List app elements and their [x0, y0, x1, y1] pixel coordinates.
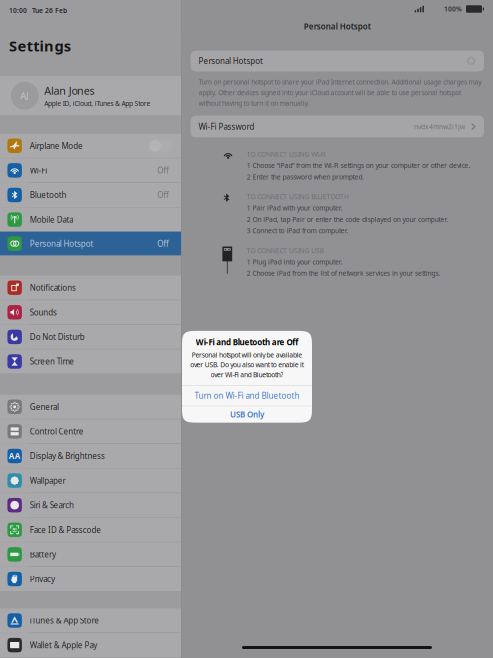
staticText: Display & Brightness	[30, 451, 105, 461]
button[interactable]: Wi-Fi Password	[191, 116, 484, 138]
button[interactable]: Control Centre	[0, 419, 181, 443]
staticText: Wallet & Apple Pay	[30, 640, 97, 650]
button[interactable]: Personal Hotspot	[0, 232, 181, 256]
staticText: Do Not Disturb	[30, 332, 85, 342]
staticText: 1 Plug iPad into your computer.	[247, 257, 343, 266]
button[interactable]: General	[0, 395, 181, 419]
staticText: over Wi-Fi and Bluetooth?	[211, 370, 283, 379]
staticText: Wi-Fi Password	[199, 121, 255, 132]
staticText: apply. Other devices signed into your iC…	[199, 88, 461, 97]
button[interactable]: Personal Hotspot	[191, 50, 484, 71]
staticText: AJ	[20, 89, 29, 102]
staticText: 1 Choose “iPad” from the Wi-Fi settings …	[247, 161, 470, 170]
button[interactable]: Turn on Wi-Fi and Bluetooth	[182, 386, 312, 406]
staticText: Turn on personal hotspot to share your i…	[199, 77, 481, 86]
staticText: Wallpaper	[30, 475, 66, 486]
staticText: Wi-Fi and Bluetooth are Off	[196, 337, 298, 347]
button[interactable]: Notifications	[0, 276, 181, 300]
staticText: 1 Pair iPad with your computer.	[247, 204, 343, 212]
staticText: Privacy	[30, 574, 55, 584]
button[interactable]: Wallpaper	[0, 469, 181, 493]
staticText: Mobile Data	[30, 214, 73, 225]
staticText: Battery	[30, 549, 56, 560]
button[interactable]: Sounds	[0, 300, 181, 324]
button[interactable]: AA	[0, 444, 181, 468]
staticText: 2 Choose iPad from the list of network s…	[247, 269, 440, 278]
staticText: Apple ID, iCloud, iTunes & App Store	[44, 99, 150, 108]
staticText: Sounds	[30, 307, 57, 318]
staticText: Wi-Fi	[30, 165, 47, 176]
staticText: TO CONNECT USING BLUETOOTH	[247, 192, 349, 201]
staticText: 100%	[444, 5, 462, 13]
staticText: TO CONNECT USING WI-FI	[247, 150, 325, 159]
staticText: TO CONNECT USING USB	[247, 246, 324, 255]
staticText: 2 Enter the password when prompted.	[247, 172, 364, 181]
button[interactable]: iTunes & App Store	[0, 608, 181, 632]
button[interactable]: USB Only	[182, 406, 312, 423]
staticText: Personal Hotspot	[30, 238, 93, 249]
staticText: Screen Time	[30, 356, 74, 367]
staticText: Settings	[9, 36, 71, 55]
button[interactable]: Face ID & Passcode	[0, 518, 181, 542]
staticText: Off	[157, 238, 169, 249]
button[interactable]: Bluetooth	[0, 183, 181, 207]
staticText: AA	[9, 451, 21, 461]
staticText: Notifications	[30, 282, 76, 293]
staticText: iTunes & App Store	[30, 615, 99, 626]
button[interactable]: Airplane Mode	[0, 134, 181, 158]
staticText: Personal Hotspot	[304, 21, 371, 32]
staticText: Personal hotspot will only be available	[192, 350, 302, 359]
staticText: 10:00	[9, 6, 27, 15]
staticText: Turn on Wi-Fi and Bluetooth	[194, 390, 299, 401]
button[interactable]: AJ	[0, 76, 181, 115]
staticText: Face ID & Passcode	[30, 524, 101, 535]
button[interactable]: Wi-Fi	[0, 158, 181, 182]
staticText: Off	[157, 190, 169, 200]
staticText: nvdx4mnw2i1jw	[414, 122, 465, 131]
staticText: Airplane Mode	[30, 140, 83, 151]
staticText: Bluetooth	[30, 190, 67, 200]
staticText: 3 Connect to iPad from computer.	[247, 226, 349, 235]
button[interactable]: Do Not Disturb	[0, 325, 181, 349]
staticText: over USB. Do you also want to enable it	[190, 360, 304, 369]
staticText: without having to turn it on manually.	[199, 99, 309, 108]
button[interactable]: Siri & Search	[0, 493, 181, 517]
staticText: Control Centre	[30, 426, 84, 437]
staticText: Personal Hotspot	[199, 56, 263, 66]
staticText: Alan Jones	[44, 83, 94, 98]
button[interactable]: Privacy	[0, 567, 181, 591]
staticText: Tue 26 Feb	[32, 6, 67, 15]
button[interactable]: Mobile Data	[0, 208, 181, 232]
staticText: Off	[157, 165, 169, 176]
button[interactable]: Wallet & Apple Pay	[0, 633, 181, 657]
staticText: 2 On iPad, tap Pair or enter the code di…	[247, 215, 448, 224]
staticText: Siri & Search	[30, 500, 74, 510]
button[interactable]: Screen Time	[0, 349, 181, 373]
button[interactable]: Battery	[0, 542, 181, 566]
staticText: General	[30, 401, 59, 412]
staticText: USB Only	[230, 409, 264, 420]
